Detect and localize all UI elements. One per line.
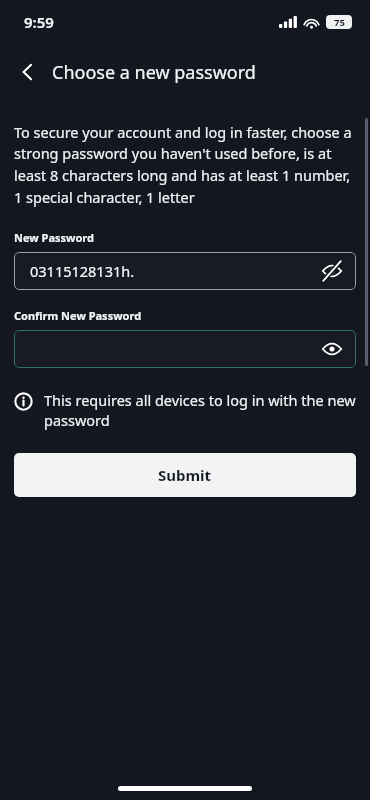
staticText: New Password — [14, 230, 94, 245]
staticText: Submit — [158, 465, 212, 485]
button[interactable]: Submit — [14, 453, 356, 497]
staticText: 75 — [334, 16, 345, 29]
button[interactable]: Back — [8, 52, 48, 92]
staticText: 03115128131h. — [30, 261, 135, 281]
staticText: Confirm New Password — [14, 308, 142, 323]
staticText: Choose a new password — [52, 60, 256, 85]
button[interactable]: Show password — [318, 335, 346, 363]
button[interactable]: 03115128131h. — [14, 252, 356, 290]
staticText: 9:59 — [24, 12, 54, 32]
button[interactable]: Hide password — [318, 257, 346, 285]
button[interactable]: Show password — [14, 330, 356, 368]
staticText: This requires all devices to log in with… — [44, 390, 356, 431]
staticText: To secure your account and log in faster… — [14, 122, 356, 208]
